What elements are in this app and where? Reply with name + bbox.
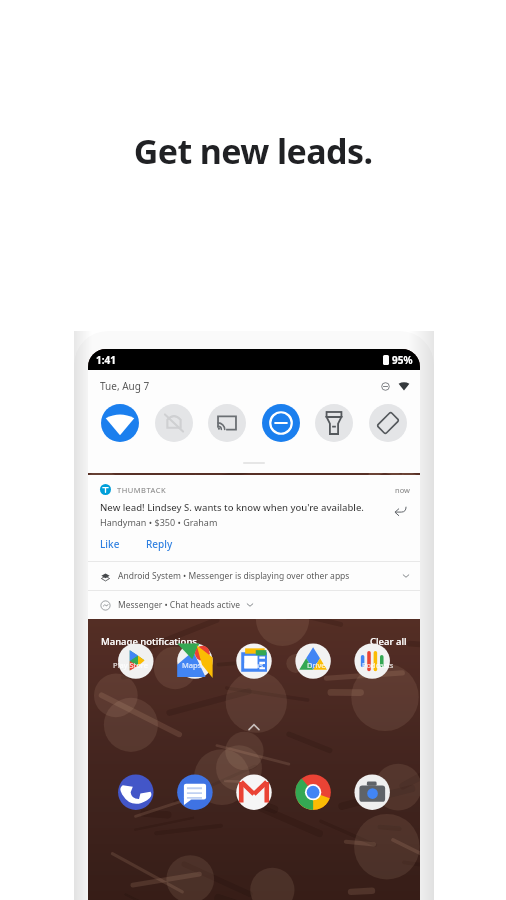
staticText: Maps: [182, 660, 202, 670]
staticText: Clear all: [370, 635, 407, 648]
button[interactable]: Like: [100, 537, 124, 551]
button[interactable]: Flashlight: [315, 404, 353, 442]
staticText: Drive: [307, 660, 326, 670]
staticText: Play Store: [113, 660, 148, 670]
button[interactable]: Manage notifications: [99, 633, 199, 650]
button[interactable]: Silent mode: [155, 404, 193, 442]
button[interactable]: Messenger • Chat heads active: [88, 591, 420, 619]
staticText: Messenger • Chat heads active: [118, 599, 241, 611]
button[interactable]: THUMBTACK: [88, 475, 420, 561]
staticText: Like: [100, 537, 120, 551]
staticText: Tue, Aug 7: [100, 379, 150, 393]
staticText: Reply: [146, 537, 173, 551]
button[interactable]: Do not disturb: [262, 404, 300, 442]
button[interactable]: Clear all: [368, 633, 409, 650]
staticText: New lead! Lindsey S. wants to know when …: [100, 501, 364, 514]
button[interactable]: Reply: [390, 501, 410, 521]
button[interactable]: Wi-Fi: [101, 404, 139, 442]
staticText: Podcasts: [362, 660, 394, 670]
button[interactable]: Android System • Messenger is displaying…: [88, 562, 420, 590]
button[interactable]: Reply: [146, 537, 177, 551]
staticText: Android System • Messenger is displaying…: [118, 570, 350, 582]
staticText: 1:41: [96, 353, 116, 367]
staticText: 95%: [392, 353, 413, 367]
staticText: THUMBTACK: [117, 485, 167, 495]
staticText: Get new leads.: [0, 128, 506, 174]
staticText: News: [244, 660, 264, 670]
button[interactable]: Cast screen: [208, 404, 246, 442]
staticText: Handyman • $350 • Graham: [100, 516, 218, 528]
staticText: Manage notifications: [101, 635, 197, 648]
button[interactable]: Auto-rotate: [369, 404, 407, 442]
staticText: now: [395, 485, 410, 495]
